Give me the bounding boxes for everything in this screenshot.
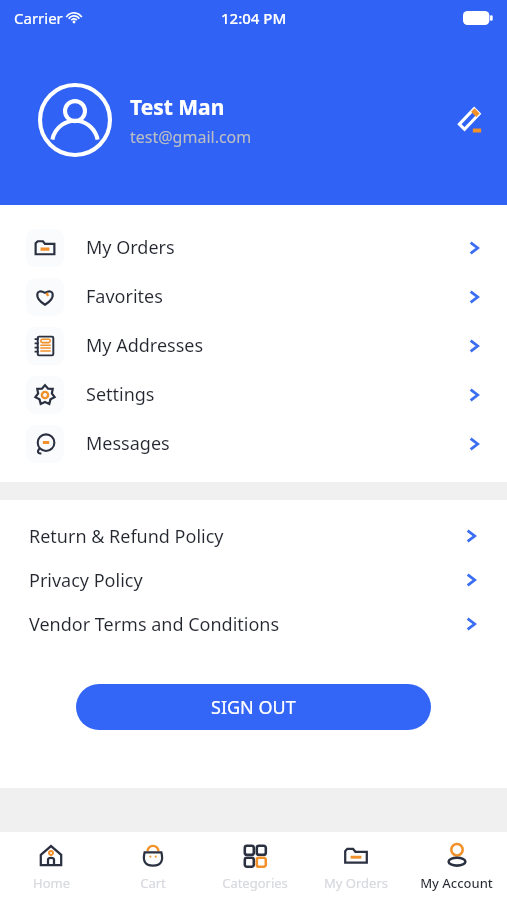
staticText: SIGN OUT: [211, 695, 296, 720]
staticText: My Orders: [324, 874, 388, 892]
staticText: My Addresses: [86, 333, 204, 358]
staticText: Settings: [86, 382, 155, 407]
staticText: My Account: [420, 874, 493, 892]
button[interactable]: Cart: [102, 832, 204, 900]
button[interactable]: Home: [0, 832, 102, 900]
button[interactable]: Edit profile: [445, 95, 493, 143]
button[interactable]: Messages: [0, 419, 507, 468]
button[interactable]: My Account: [406, 832, 507, 900]
staticText: My Orders: [86, 235, 175, 260]
button[interactable]: Return & Refund Policy: [0, 514, 507, 558]
button[interactable]: Settings: [0, 370, 507, 419]
staticText: Return & Refund Policy: [29, 524, 224, 549]
staticText: test@gmail.com: [130, 126, 252, 148]
staticText: Carrier: [14, 8, 63, 28]
button[interactable]: SIGN OUT: [76, 684, 431, 730]
staticText: Cart: [140, 874, 166, 892]
staticText: 12:04 PM: [221, 8, 287, 28]
button[interactable]: Privacy Policy: [0, 558, 507, 602]
button[interactable]: My Addresses: [0, 321, 507, 370]
button[interactable]: My Orders: [0, 223, 507, 272]
button[interactable]: My Orders: [305, 832, 406, 900]
staticText: Privacy Policy: [29, 568, 143, 593]
staticText: Vendor Terms and Conditions: [29, 612, 280, 637]
button[interactable]: Favorites: [0, 272, 507, 321]
staticText: Messages: [86, 431, 170, 456]
staticText: Test Man: [130, 93, 225, 122]
button[interactable]: Vendor Terms and Conditions: [0, 602, 507, 646]
staticText: Categories: [222, 874, 288, 892]
button[interactable]: Categories: [204, 832, 305, 900]
staticText: Favorites: [86, 284, 163, 309]
staticText: Home: [33, 874, 70, 892]
